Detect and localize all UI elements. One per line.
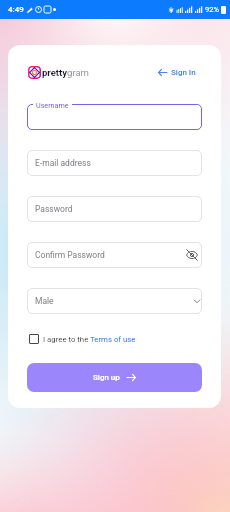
other: Toggle password visibility — [185, 248, 199, 262]
button[interactable]: Password — [27, 196, 202, 222]
button[interactable]: Sign In — [158, 68, 202, 77]
button[interactable]: Sign up — [27, 363, 202, 392]
staticText: Password — [35, 204, 73, 214]
staticText: Sign up — [93, 373, 120, 382]
staticText: Male — [35, 296, 54, 306]
staticText: Sign In — [171, 68, 196, 77]
staticText: I agree to the Terms of use — [43, 335, 136, 344]
staticText: E-mail address — [35, 158, 91, 168]
staticText: 92% — [205, 5, 219, 14]
button[interactable]: E-mail address — [27, 150, 202, 176]
button[interactable]: Male — [27, 288, 202, 314]
button[interactable]: Confirm Password — [27, 242, 202, 268]
staticText: 4:49 — [8, 5, 24, 14]
button[interactable]: I agree to the Terms of use — [29, 331, 136, 347]
button[interactable]: prettygram — [28, 66, 89, 79]
button[interactable] — [27, 104, 202, 130]
staticText: prettygram — [42, 67, 89, 78]
staticText: Confirm Password — [35, 250, 105, 260]
other: Expand gender options — [194, 298, 200, 304]
staticText: Username — [36, 101, 69, 109]
